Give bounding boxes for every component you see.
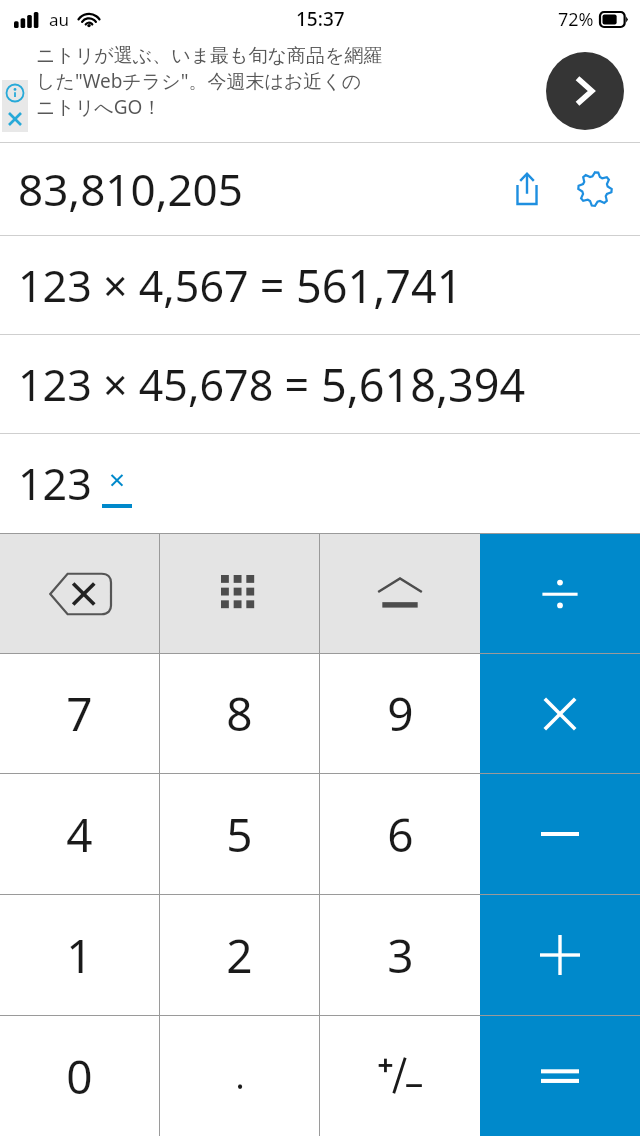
staticText: ×	[109, 460, 126, 498]
staticText: 4	[66, 803, 93, 866]
button[interactable]: Divide	[480, 534, 640, 653]
staticText: 8	[226, 682, 253, 745]
button[interactable]: 1	[0, 895, 159, 1015]
button[interactable]: Multiply	[480, 654, 640, 773]
button[interactable]: 123 × 4,567 =	[0, 236, 640, 334]
button[interactable]: Equals	[480, 1016, 640, 1136]
button[interactable]: .	[160, 1016, 319, 1136]
button[interactable]: Delete	[0, 534, 159, 653]
staticText: 5,618,394	[321, 354, 526, 415]
staticText: 3	[387, 924, 414, 987]
staticText: 5	[226, 803, 253, 866]
button[interactable]: 7	[0, 654, 159, 773]
staticText: 83,810,205	[18, 159, 243, 219]
button[interactable]: 9	[320, 654, 480, 773]
staticText: 1	[66, 924, 93, 987]
button[interactable]: Minus	[480, 774, 640, 894]
button[interactable]: Ad information	[2, 80, 28, 106]
button[interactable]: 8	[160, 654, 319, 773]
button[interactable]: Settings	[572, 166, 618, 212]
button[interactable]: Keypad	[160, 534, 319, 653]
button[interactable]: 123 × 45,678 =	[0, 335, 640, 433]
staticText: 123 × 4,567 =	[18, 256, 296, 315]
button[interactable]: 5	[160, 774, 319, 894]
button[interactable]: 6	[320, 774, 480, 894]
button[interactable]: 0	[0, 1016, 159, 1136]
staticText: した"Webチラシ"。今週末はお近くの	[36, 68, 362, 94]
staticText: 6	[387, 803, 414, 866]
staticText: 2	[226, 924, 253, 987]
staticText: 561,741	[296, 255, 463, 316]
staticText: 123	[18, 454, 92, 513]
staticText: ニトリが選ぶ、いま最も旬な商品を網羅	[36, 44, 383, 68]
button[interactable]: Collapse	[320, 534, 480, 653]
button[interactable]: 2	[160, 895, 319, 1015]
staticText: .	[235, 1053, 245, 1099]
button[interactable]: Plus	[480, 895, 640, 1015]
button[interactable]: Plus minus	[320, 1016, 480, 1136]
staticText: 7	[66, 682, 93, 745]
staticText: 15:37	[296, 6, 345, 32]
staticText: 72%	[558, 7, 594, 32]
button[interactable]: Close ad	[2, 106, 28, 132]
button[interactable]: 123	[0, 434, 640, 533]
staticText: au	[49, 8, 70, 31]
button[interactable]: 3	[320, 895, 480, 1015]
staticText: ニトリへGO！	[36, 94, 162, 120]
staticText: 9	[387, 682, 414, 745]
button[interactable]: Open ad	[546, 52, 624, 130]
button[interactable]: Share	[504, 166, 550, 212]
staticText: 123 × 45,678 =	[18, 355, 321, 414]
button[interactable]: 4	[0, 774, 159, 894]
staticText: 0	[66, 1045, 93, 1108]
